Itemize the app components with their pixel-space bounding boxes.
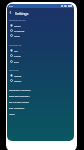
staticText: Settings: [15, 11, 29, 16]
staticText: 9:41: [9, 5, 13, 8]
staticText: Celsius: [14, 25, 21, 28]
staticText: Military: [14, 80, 21, 83]
button[interactable]: Kelvin: [10, 33, 68, 38]
staticText: hPa: [14, 50, 18, 53]
button[interactable]: Fahrenheit: [10, 28, 68, 33]
button[interactable]: Buy Premium Version: [9, 99, 69, 105]
staticText: mmHg: [14, 55, 21, 58]
button[interactable]: mmHg: [10, 53, 68, 58]
staticText: Temperature Unit: [9, 19, 25, 22]
button[interactable]: Rate Application: [9, 105, 69, 111]
button[interactable]: About: [9, 111, 69, 117]
staticText: Reset Intro/Indicators: [9, 95, 29, 98]
staticText: Kelvin: [14, 35, 20, 38]
staticText: Background Animation: [9, 89, 31, 92]
button[interactable]: Background Animation: [9, 87, 69, 93]
staticText: Buy Premium Version: [9, 101, 29, 104]
staticText: Rate Application: [9, 107, 24, 110]
staticText: inHg: [14, 61, 19, 64]
staticText: Time Type: [9, 69, 19, 72]
button[interactable]: Reset Intro/Indicators: [9, 93, 69, 99]
staticText: About: [9, 113, 15, 116]
button[interactable]: Military: [10, 78, 68, 83]
button[interactable]: Celsius: [10, 23, 68, 28]
staticText: Pressure Unit: [9, 44, 21, 47]
staticText: Fahrenheit: [14, 30, 25, 33]
button[interactable]: hPa: [10, 48, 68, 53]
button[interactable]: Regular: [10, 73, 68, 78]
staticText: Regular: [14, 75, 21, 78]
button[interactable]: inHg: [10, 59, 68, 64]
button[interactable]: Back: [8, 10, 13, 15]
